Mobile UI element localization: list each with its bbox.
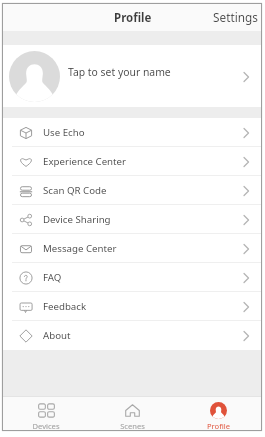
button[interactable]: Devices — [3, 397, 89, 430]
button[interactable]: Profile — [175, 397, 261, 430]
button[interactable]: Scenes — [89, 397, 175, 430]
staticText: Feedback — [43, 300, 87, 313]
button[interactable]: Device Sharing — [3, 205, 261, 234]
button[interactable]: FAQ — [3, 263, 261, 292]
staticText: About — [43, 329, 71, 342]
staticText: FAQ — [43, 271, 62, 284]
button[interactable]: Use Echo — [3, 118, 261, 147]
staticText: Profile — [207, 421, 230, 430]
staticText: Experience Center — [43, 155, 127, 168]
staticText: Message Center — [43, 242, 117, 255]
button[interactable]: About — [3, 321, 261, 350]
button[interactable]: Settings — [207, 6, 261, 30]
staticText: Tap to set your name — [68, 65, 171, 79]
button[interactable]: Scan QR Code — [3, 176, 261, 205]
staticText: Scan QR Code — [43, 184, 107, 197]
staticText: Use Echo — [43, 126, 85, 139]
button[interactable]: Experience Center — [3, 147, 261, 176]
staticText: Settings — [213, 9, 258, 25]
staticText: Devices — [32, 421, 60, 430]
button[interactable]: Tap to set your name — [3, 45, 261, 107]
staticText: Device Sharing — [43, 213, 111, 226]
staticText: Profile — [114, 10, 152, 26]
staticText: Scenes — [120, 421, 145, 430]
button[interactable]: Feedback — [3, 292, 261, 321]
button[interactable]: Message Center — [3, 234, 261, 263]
